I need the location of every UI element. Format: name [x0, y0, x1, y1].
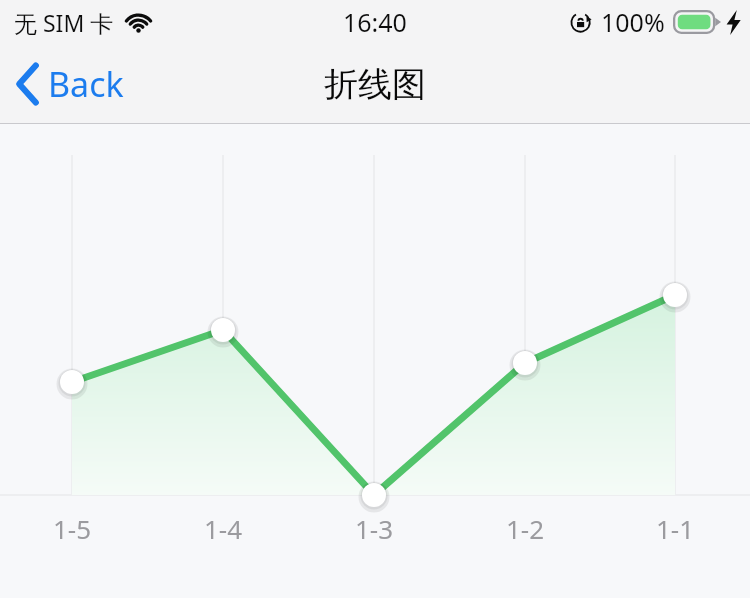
other: Wi-Fi signal [125, 12, 152, 33]
staticText: 1-2 [475, 511, 575, 546]
button[interactable]: Back [8, 53, 132, 115]
staticText: 1-1 [625, 511, 725, 546]
other: Rotation lock [570, 11, 593, 34]
staticText: 1-3 [324, 511, 424, 546]
other: Battery 100 percent [673, 10, 721, 34]
staticText: 100% [601, 5, 665, 39]
staticText: 折线图 [324, 63, 426, 106]
staticText: 1-4 [173, 511, 273, 546]
staticText: 16:40 [343, 5, 407, 39]
staticText: 无 SIM 卡 [14, 7, 114, 38]
staticText: 1-5 [22, 511, 122, 546]
staticText: Back [48, 61, 124, 107]
